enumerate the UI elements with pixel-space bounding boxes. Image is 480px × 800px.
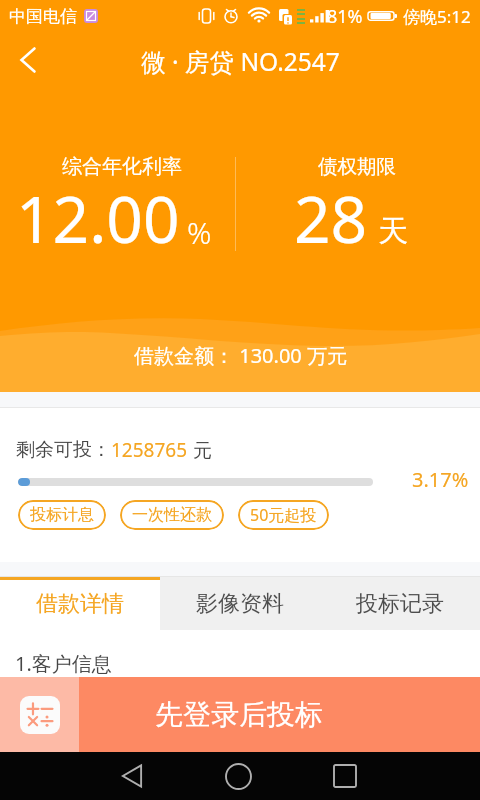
- button[interactable]: 先登录后投标: [79, 677, 480, 752]
- staticText: 50元起投: [250, 504, 317, 526]
- staticText: 借款金额： 130.00 万元: [134, 342, 347, 369]
- staticText: 天: [378, 212, 408, 250]
- staticText: 投标计息: [30, 505, 94, 525]
- button[interactable]: 50元起投: [238, 500, 329, 530]
- button[interactable]: Back: [110, 754, 154, 798]
- button[interactable]: 投标计息: [18, 500, 106, 530]
- staticText: 元: [188, 437, 212, 463]
- staticText: 81%: [327, 4, 363, 29]
- staticText: 傍晚5:12: [403, 5, 471, 28]
- staticText: 先登录后投标: [155, 697, 323, 732]
- button[interactable]: 一次性还款: [120, 500, 224, 530]
- button[interactable]: 影像资料: [160, 577, 320, 630]
- staticText: 剩余可投：: [16, 438, 111, 462]
- staticText: 借款详情: [36, 590, 124, 618]
- staticText: 影像资料: [196, 590, 284, 618]
- staticText: 微 · 房贷 NO.2547: [141, 45, 340, 78]
- button[interactable]: Calculator: [0, 677, 79, 752]
- staticText: 28: [294, 175, 368, 262]
- staticText: 12.00: [16, 175, 180, 262]
- button[interactable]: 投标记录: [320, 577, 480, 630]
- button[interactable]: Home: [216, 754, 260, 798]
- staticText: 1258765: [111, 437, 188, 463]
- staticText: 1.客户信息: [15, 650, 112, 677]
- staticText: 3.17%: [412, 466, 469, 493]
- button[interactable]: Back: [6, 38, 50, 82]
- staticText: %: [187, 212, 212, 253]
- button[interactable]: 借款详情: [0, 577, 160, 630]
- staticText: 一次性还款: [132, 505, 212, 525]
- staticText: 综合年化利率: [62, 154, 182, 179]
- staticText: 投标记录: [356, 590, 444, 618]
- staticText: 中国电信: [9, 6, 77, 27]
- button[interactable]: Recent apps: [323, 754, 367, 798]
- staticText: 债权期限: [318, 154, 396, 179]
